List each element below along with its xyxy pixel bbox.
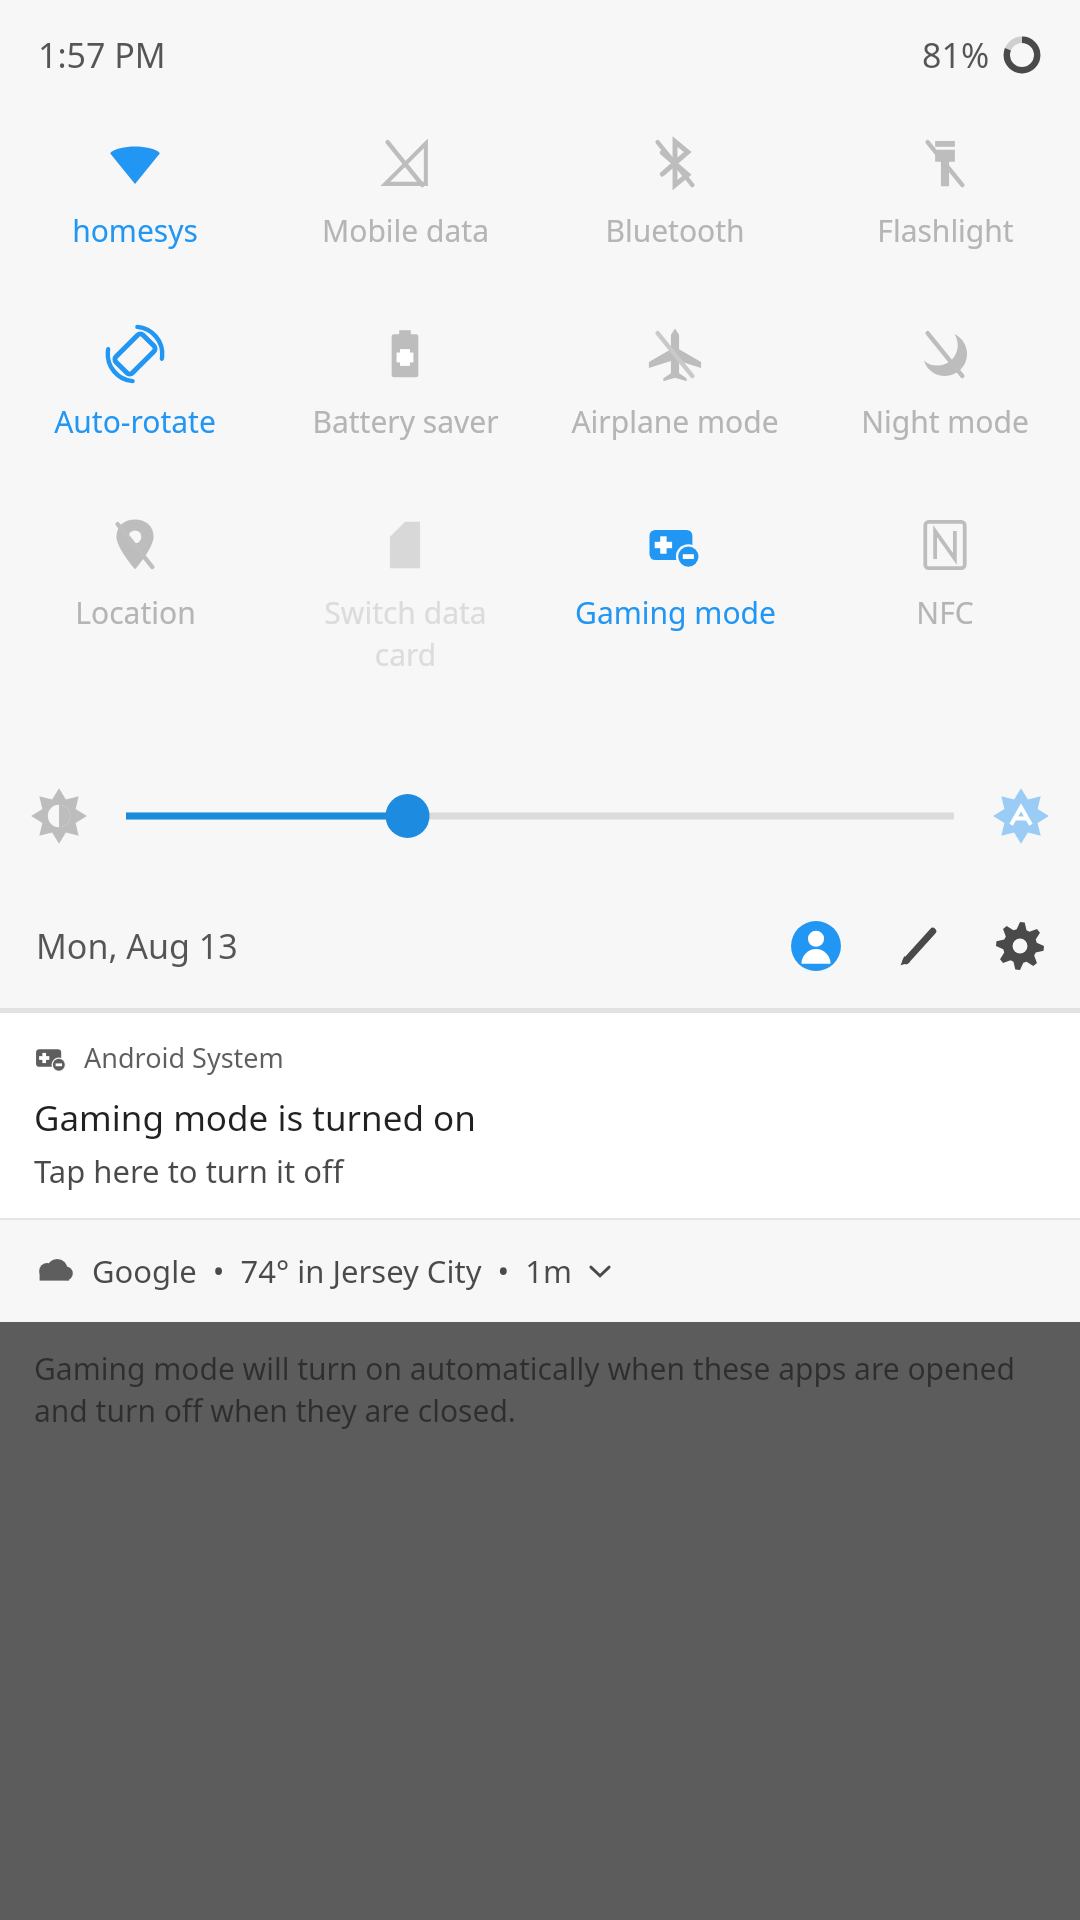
staticText: 81% [922,32,990,78]
staticText: 1:57 PM [38,32,166,78]
button[interactable]: Auto-rotate [0,319,270,448]
staticText: Bluetooth [605,210,745,251]
staticText: homesys [72,210,198,251]
staticText: Gaming mode is turned on [34,1094,476,1142]
button[interactable]: Auto brightness [992,787,1050,845]
button[interactable]: Switch data card [270,510,540,681]
staticText: Gaming mode [575,592,776,633]
staticText: Mon, Aug 13 [36,923,238,969]
staticText: Mobile data [322,210,489,251]
staticText: Location [75,592,196,633]
button[interactable]: Night mode [810,319,1080,448]
button[interactable]: Airplane mode [540,319,810,448]
button[interactable]: Mobile data [270,128,540,257]
staticText: Google • 74° in Jersey City • 1m [92,1250,573,1292]
staticText: Battery saver [312,401,499,442]
staticText: Flashlight [877,210,1014,251]
button[interactable]: Google • 74° in Jersey City • 1m [0,1220,1080,1322]
staticText: Airplane mode [571,401,779,442]
button[interactable]: Bluetooth [540,128,810,257]
button[interactable]: Android System [0,1013,1080,1218]
button[interactable]: NFC [810,510,1080,639]
button[interactable]: Battery saver [270,319,540,448]
staticText: NFC [916,592,974,633]
button[interactable]: Location [0,510,270,639]
staticText: Switch data card [324,592,487,675]
button[interactable]: homesys [0,128,270,257]
button[interactable]: Settings [996,922,1044,970]
staticText: Night mode [861,401,1029,442]
button[interactable]: Brightness [30,787,88,845]
button[interactable]: Flashlight [810,128,1080,257]
button[interactable]: Brightness slider [126,786,954,846]
button[interactable]: User [790,920,842,972]
staticText: Auto-rotate [54,401,216,442]
staticText: Tap here to turn it off [34,1150,344,1192]
button[interactable]: Edit [896,923,942,969]
button[interactable]: Gaming mode [540,510,810,639]
staticText: Gaming mode will turn on automatically w… [34,1348,1020,1431]
staticText: Android System [84,1039,284,1076]
